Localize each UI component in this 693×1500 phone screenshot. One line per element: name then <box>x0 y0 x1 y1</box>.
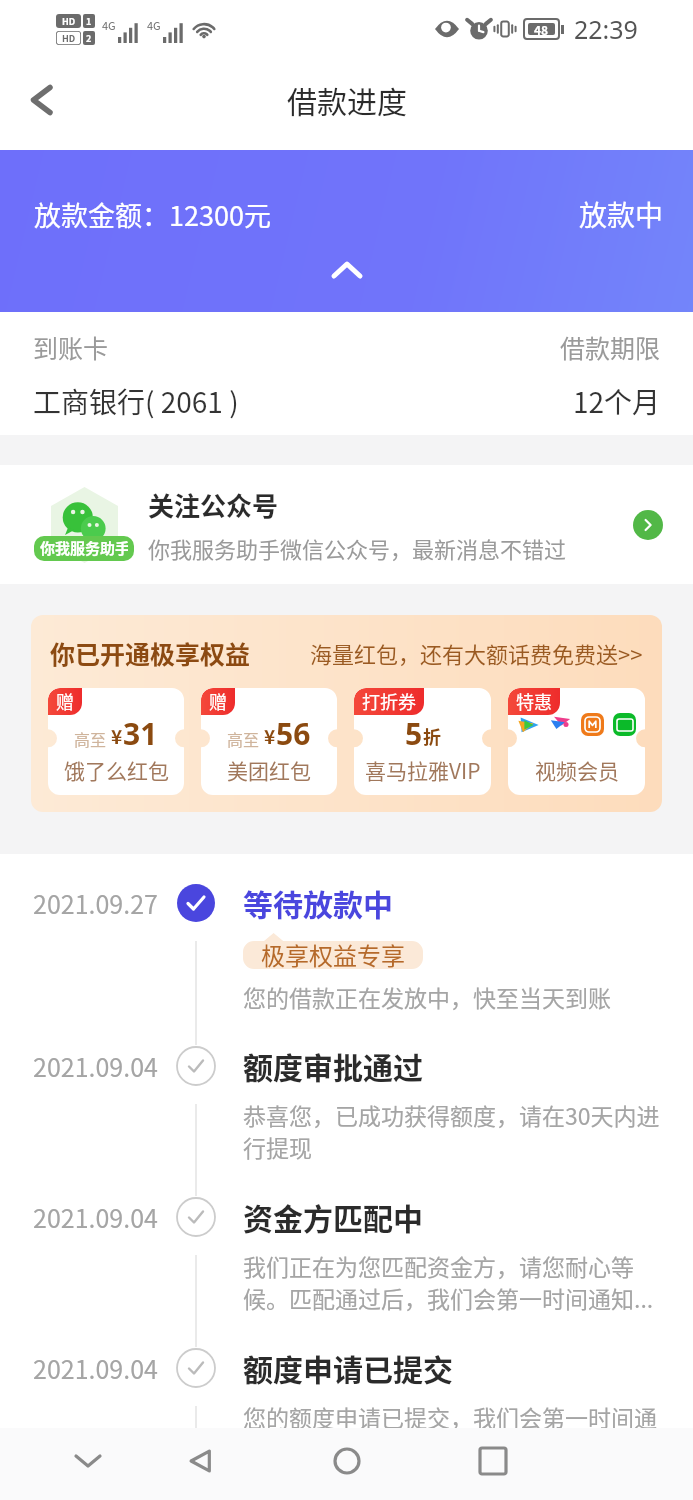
staticText: 我们正在为您匹配资金方，请您耐心等候。匹配通过后，我们会第一时间通知... <box>243 1249 663 1315</box>
staticText: 22:39 <box>574 12 638 46</box>
staticText: 2 <box>86 32 92 45</box>
staticText: 借款进度 <box>287 78 407 121</box>
staticText: 等待放款中 <box>243 881 393 924</box>
staticText: 赠 <box>209 688 227 714</box>
staticText: 关注公众号 <box>148 486 279 524</box>
button[interactable]: Home <box>310 1425 384 1497</box>
staticText: 借款期限 <box>560 329 661 365</box>
staticText: 极享权益专享 <box>261 937 405 969</box>
staticText: 赠 <box>56 688 74 714</box>
staticText: 2021.09.27 <box>33 885 174 921</box>
staticText: 折 <box>423 723 441 749</box>
staticText: 你我服务助手微信公众号，最新消息不错过 <box>148 532 567 564</box>
staticText: 工商银行( 2061 ) <box>33 381 239 422</box>
button[interactable]: Hide keyboard <box>51 1425 125 1497</box>
staticText: 1 <box>86 15 92 28</box>
staticText: 你已开通极享权益 <box>50 635 251 671</box>
staticText: 资金方匹配中 <box>243 1195 423 1238</box>
button[interactable]: 5 <box>354 688 491 795</box>
staticText: 你我服务助手 <box>40 537 128 559</box>
button[interactable]: 视频会员 <box>508 688 645 795</box>
button[interactable]: Back <box>164 1425 238 1497</box>
staticText: 2021.09.04 <box>33 1199 174 1235</box>
staticText: 您的额度申请已提交，我们会第一时间通 <box>243 1400 657 1433</box>
staticText: ¥ <box>111 722 123 750</box>
staticText: 您的借款正在发放中，快至当天到账 <box>243 980 611 1013</box>
staticText: 美团红包 <box>227 755 311 785</box>
staticText: 5 <box>405 713 423 754</box>
staticText: 12个月 <box>573 381 661 422</box>
staticText: 喜马拉雅VIP <box>365 755 481 785</box>
staticText: 高至 <box>227 727 260 750</box>
button[interactable]: Back <box>0 58 84 150</box>
staticText: 恭喜您，已成功获得额度，请在30天内进行提现 <box>243 1098 663 1164</box>
button[interactable]: 高至 <box>201 688 337 795</box>
staticText: 饿了么红包 <box>64 755 169 785</box>
button[interactable]: Recent apps <box>456 1425 530 1497</box>
button[interactable]: Collapse <box>317 250 377 290</box>
staticText: 4G <box>102 17 116 33</box>
staticText: 额度审批通过 <box>243 1044 423 1087</box>
staticText: 4G <box>147 17 161 33</box>
staticText: 到账卡 <box>33 329 109 365</box>
staticText: 48 <box>534 21 549 38</box>
staticText: 31 <box>123 713 158 754</box>
staticText: 2021.09.04 <box>33 1048 174 1084</box>
staticText: 打折券 <box>362 688 416 714</box>
staticText: HD <box>62 32 76 45</box>
button[interactable]: 高至 <box>48 688 184 795</box>
staticText: 高至 <box>74 727 107 750</box>
staticText: 海量红包，还有大额话费免费送>> <box>310 637 643 669</box>
staticText: ¥ <box>264 722 276 750</box>
staticText: 额度申请已提交 <box>243 1346 453 1389</box>
staticText: 放款中 <box>579 194 664 235</box>
staticText: 2021.09.04 <box>33 1350 174 1386</box>
staticText: 放款金额：12300元 <box>34 195 271 234</box>
staticText: 56 <box>276 713 311 754</box>
staticText: 视频会员 <box>535 755 619 785</box>
staticText: HD <box>62 15 76 28</box>
staticText: 特惠 <box>516 688 552 714</box>
button[interactable]: 你我服务助手 <box>0 465 693 584</box>
